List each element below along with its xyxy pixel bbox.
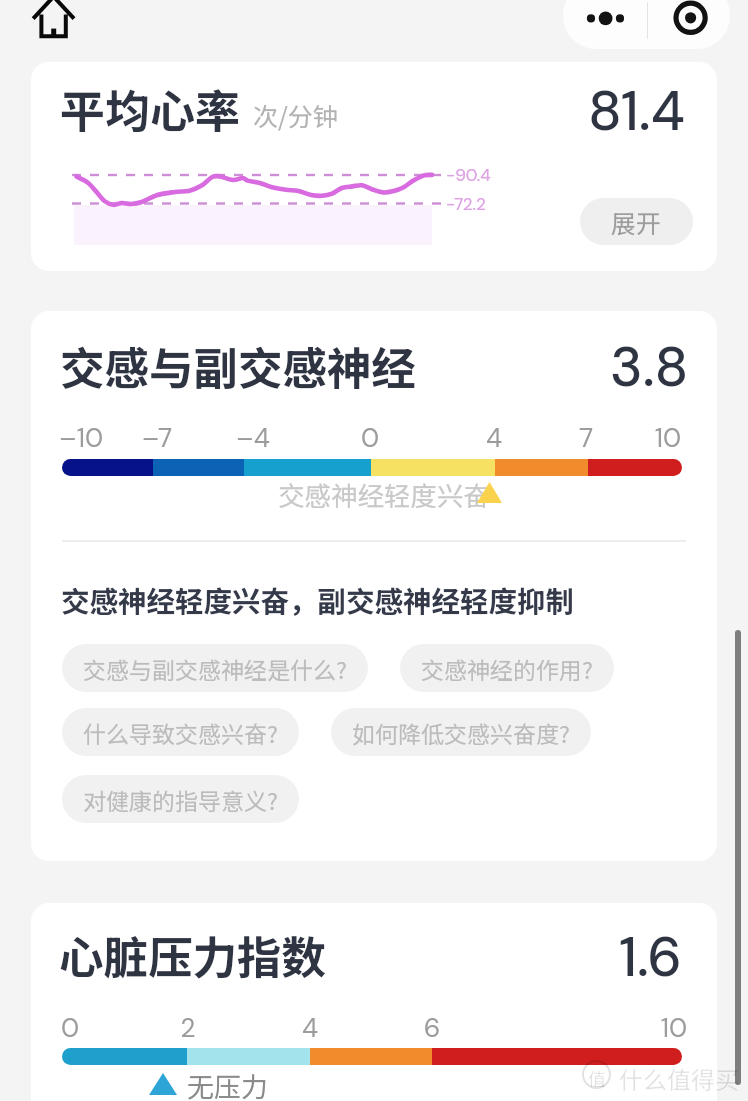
button[interactable]: 展开	[580, 198, 693, 245]
staticText: 7	[546, 421, 626, 456]
staticText: 交感与副交感神经是什么?	[83, 652, 347, 685]
staticText: 0	[330, 421, 410, 456]
button[interactable]: More options	[563, 0, 647, 49]
button[interactable]: Home	[30, 0, 78, 40]
staticText: 4	[454, 421, 534, 456]
staticText: 1.6	[619, 921, 682, 993]
staticText: 心脏压力指数	[59, 922, 327, 986]
staticText: 10	[634, 1011, 714, 1046]
staticText: –10	[41, 421, 121, 456]
staticText: 2	[148, 1011, 228, 1046]
button[interactable]: Close mini program	[648, 0, 730, 49]
staticText: 4	[270, 1011, 350, 1046]
button[interactable]: 如何降低交感兴奋度?	[331, 708, 591, 756]
button[interactable]: 什么导致交感兴奋?	[62, 708, 299, 756]
staticText: 交感神经轻度兴奋	[278, 475, 490, 513]
staticText: 如何降低交感兴奋度?	[352, 716, 570, 749]
staticText: 交感神经的作用?	[421, 652, 593, 685]
staticText: 81.4	[588, 75, 685, 147]
staticText: 6	[392, 1011, 472, 1046]
staticText: 3.8	[610, 331, 689, 403]
staticText: 对健康的指导意义?	[83, 783, 278, 816]
button[interactable]: 交感与副交感神经是什么?	[62, 644, 368, 692]
staticText: –7	[117, 421, 197, 456]
staticText: 什么值得买	[619, 1061, 739, 1096]
staticText: 展开	[611, 204, 662, 240]
staticText: 什么导致交感兴奋?	[83, 716, 278, 749]
staticText: 值	[588, 1065, 606, 1091]
staticText: 交感与副交感神经	[60, 333, 417, 397]
staticText: 0	[31, 1011, 110, 1046]
staticText: 无压力	[187, 1066, 268, 1101]
staticText: 次/分钟	[253, 97, 338, 133]
button[interactable]: 交感神经的作用?	[400, 644, 614, 692]
staticText: 平均心率	[60, 76, 241, 141]
staticText: -90.4	[446, 164, 491, 186]
staticText: –4	[213, 421, 293, 456]
staticText: 交感神经轻度兴奋，副交感神经轻度抑制	[61, 579, 575, 620]
staticText: -72.2	[446, 193, 486, 215]
staticText: 10	[628, 421, 708, 456]
button[interactable]: 对健康的指导意义?	[62, 775, 299, 823]
